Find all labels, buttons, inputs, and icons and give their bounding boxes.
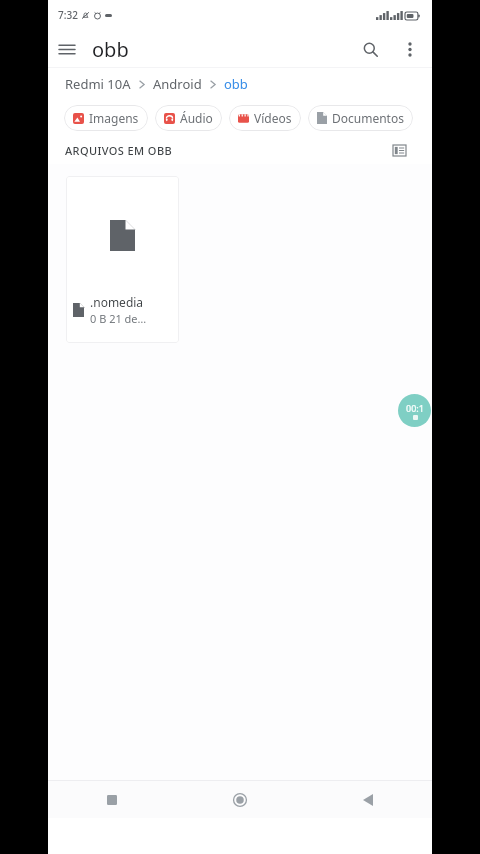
staticText: Documentos	[332, 110, 404, 126]
staticText: ARQUIVOS EM OBB	[65, 143, 173, 158]
button[interactable]: Open navigation drawer	[48, 30, 86, 68]
staticText: 0 B 21 de…	[90, 311, 147, 326]
button[interactable]: More options	[390, 30, 430, 68]
button[interactable]: Imagens	[64, 105, 148, 131]
button[interactable]: obb	[224, 75, 248, 93]
staticText: obb	[224, 75, 248, 93]
button[interactable]: Documentos	[308, 105, 413, 131]
staticText: obb	[92, 36, 129, 63]
staticText: 00:1	[406, 402, 424, 414]
button[interactable]: Screen recorder timer	[398, 394, 431, 427]
button[interactable]: Home	[176, 781, 304, 818]
button[interactable]: Back	[304, 781, 432, 818]
staticText: Imagens	[89, 110, 139, 126]
button[interactable]: Switch to list view	[386, 137, 412, 163]
button[interactable]: Search	[350, 30, 390, 68]
staticText: Áudio	[180, 110, 213, 126]
button[interactable]: .nomedia	[66, 176, 179, 343]
button[interactable]: Áudio	[155, 105, 222, 131]
button[interactable]: Vídeos	[229, 105, 301, 131]
staticText: .nomedia	[90, 294, 144, 310]
staticText: Vídeos	[254, 110, 292, 126]
staticText: 7:32	[58, 8, 78, 22]
button[interactable]: Redmi 10A	[65, 75, 131, 93]
staticText: Android	[153, 75, 202, 93]
button[interactable]: Android	[153, 75, 202, 93]
button[interactable]: Recent apps	[48, 781, 176, 818]
staticText: Redmi 10A	[65, 75, 131, 93]
